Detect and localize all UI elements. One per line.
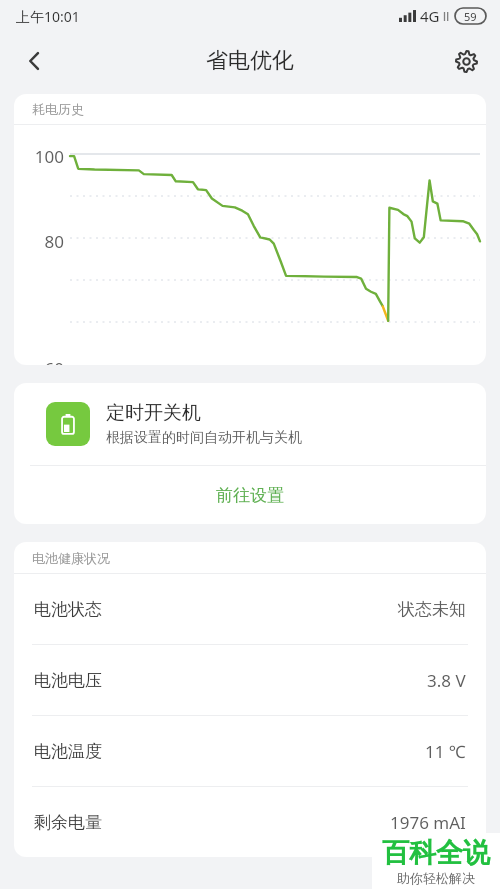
staticText: 59 — [464, 9, 477, 24]
staticText: 4G — [420, 6, 440, 26]
staticText: 助你轻松解决 — [397, 870, 475, 886]
staticText: 耗电历史 — [32, 101, 84, 117]
staticText: 电池状态 — [34, 599, 102, 620]
button[interactable]: 电池温度 — [14, 716, 486, 786]
staticText: 60 — [14, 357, 64, 365]
staticText: 1976 mAI — [390, 811, 466, 834]
staticText: 百科全说 — [382, 836, 490, 870]
staticText: 省电优化 — [206, 47, 294, 75]
button[interactable]: 剩余电量 — [14, 787, 486, 857]
button[interactable]: Back — [10, 37, 58, 85]
staticText: 3.8 V — [427, 669, 466, 692]
button[interactable]: 定时开关机 — [14, 383, 486, 465]
staticText: 11 ℃ — [425, 740, 466, 763]
staticText: 80 — [14, 230, 64, 253]
staticText: 状态未知 — [398, 599, 466, 620]
staticText: 前往设置 — [216, 485, 284, 506]
button[interactable]: 电池电压 — [14, 645, 486, 715]
button[interactable]: Settings — [442, 37, 490, 85]
staticText: 电池健康状况 — [32, 550, 110, 566]
staticText: 100 — [14, 145, 64, 168]
button[interactable]: 前往设置 — [14, 466, 486, 524]
staticText: 上午10:01 — [16, 7, 80, 26]
staticText: 剩余电量 — [34, 812, 102, 833]
staticText: 根据设置的时间自动开机与关机 — [106, 429, 302, 447]
button[interactable]: 电池状态 — [14, 574, 486, 644]
staticText: 定时开关机 — [106, 401, 201, 425]
staticText: 电池电压 — [34, 670, 102, 691]
staticText: 电池温度 — [34, 741, 102, 762]
